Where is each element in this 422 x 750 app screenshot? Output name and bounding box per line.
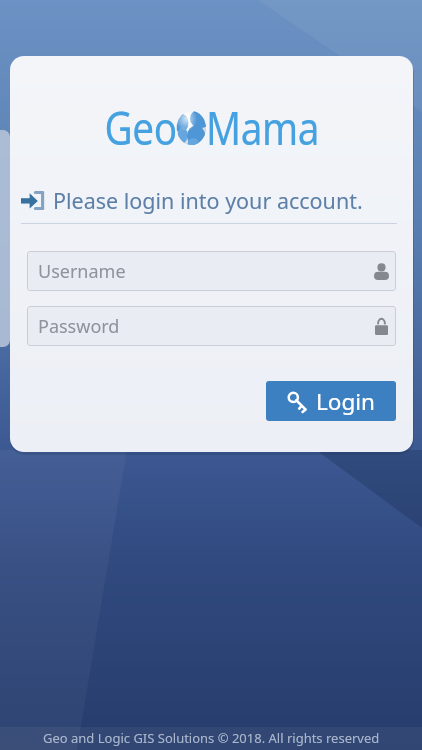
button[interactable]: Login (266, 381, 396, 421)
button[interactable]: Username (27, 251, 396, 291)
staticText: Username (38, 259, 126, 284)
staticText: Geo and Logic GIS Solutions © 2018. All … (43, 729, 380, 747)
staticText: Geo (104, 97, 177, 158)
button[interactable]: Password (27, 306, 396, 346)
staticText: Login (316, 386, 375, 417)
staticText: Please login into your account. (53, 186, 363, 215)
staticText: Mama (206, 97, 319, 158)
staticText: Password (38, 314, 120, 339)
